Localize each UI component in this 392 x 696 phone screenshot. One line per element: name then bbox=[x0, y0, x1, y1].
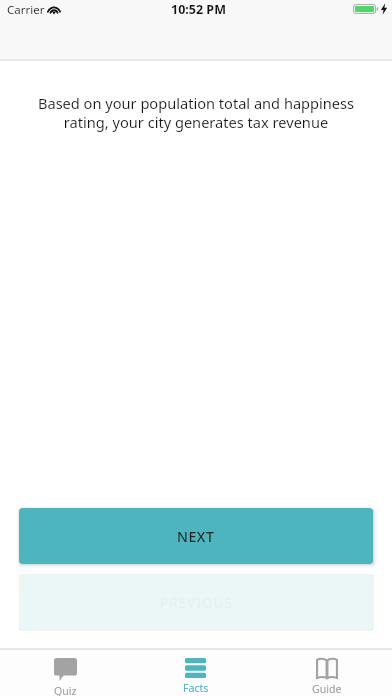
button[interactable]: Quiz bbox=[0, 650, 130, 696]
staticText: Carrier bbox=[7, 2, 45, 18]
staticText: Guide bbox=[312, 682, 342, 696]
staticText: Facts bbox=[183, 681, 209, 695]
staticText: 10:52 PM bbox=[171, 1, 226, 18]
staticText: Based on your population total and happi… bbox=[26, 93, 366, 133]
staticText: Quiz bbox=[54, 684, 77, 696]
button[interactable]: Facts bbox=[130, 650, 261, 696]
button[interactable]: Guide bbox=[261, 650, 392, 696]
button[interactable]: NEXT bbox=[19, 508, 373, 564]
staticText: NEXT bbox=[177, 527, 215, 546]
